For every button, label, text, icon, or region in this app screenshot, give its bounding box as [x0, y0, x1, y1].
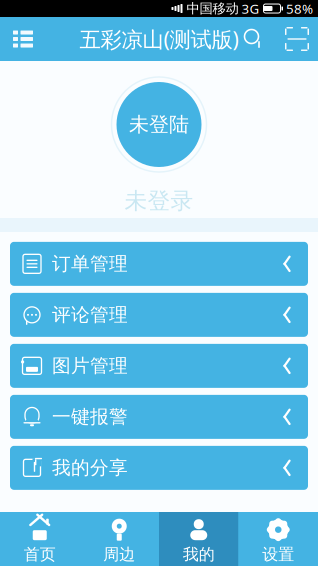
staticText: 58%: [286, 0, 313, 17]
button[interactable]: 设置: [238, 512, 318, 566]
button[interactable]: 未登陆: [116, 82, 201, 167]
button[interactable]: 订单管理: [10, 242, 308, 286]
staticText: 未登陆: [129, 112, 189, 137]
button[interactable]: 周边: [79, 512, 159, 566]
button[interactable]: 评论管理: [10, 293, 308, 337]
button[interactable]: 首页: [0, 512, 79, 566]
staticText: 3G: [241, 0, 259, 17]
staticText: 设置: [262, 545, 294, 564]
staticText: 周边: [103, 545, 135, 564]
staticText: 中国移动: [186, 0, 238, 17]
button[interactable]: Scan: [276, 17, 318, 61]
staticText: 首页: [24, 545, 56, 564]
staticText: 订单管理: [52, 252, 128, 275]
button[interactable]: 图片管理: [10, 344, 308, 388]
button[interactable]: Menu: [0, 17, 46, 61]
button[interactable]: 一键报警: [10, 395, 308, 439]
button[interactable]: 我的分享: [10, 446, 308, 490]
staticText: 我的分享: [52, 456, 128, 479]
staticText: 五彩凉山(测试版): [79, 25, 238, 53]
staticText: 未登录: [124, 187, 193, 215]
staticText: 一键报警: [52, 405, 128, 428]
staticText: 图片管理: [52, 354, 128, 377]
staticText: 我的: [183, 545, 215, 564]
staticText: 评论管理: [52, 303, 128, 326]
button[interactable]: Search: [232, 17, 276, 61]
button[interactable]: 我的: [159, 512, 238, 566]
